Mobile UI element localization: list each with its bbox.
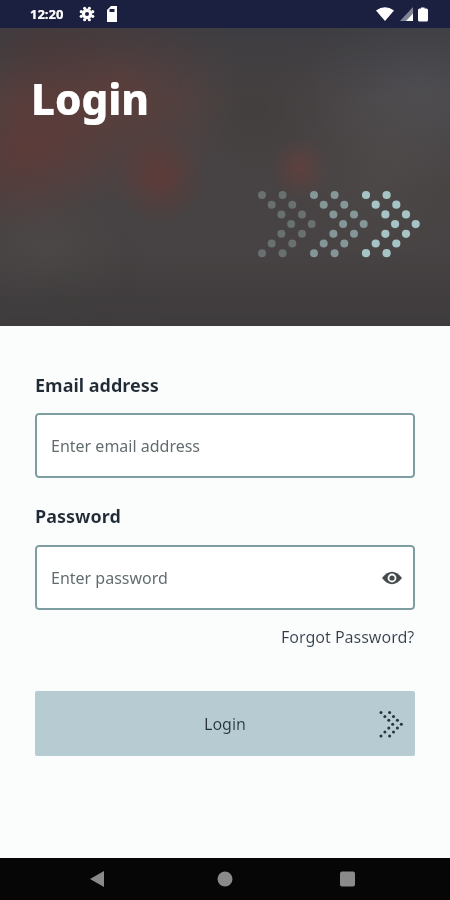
button[interactable]: Enter password: [35, 545, 415, 610]
staticText: Enter email address: [51, 435, 201, 457]
staticText: 12:20: [30, 5, 64, 23]
button[interactable]: [150, 858, 300, 900]
staticText: Password: [35, 504, 121, 529]
staticText: Login: [31, 70, 149, 127]
staticText: Login: [204, 713, 246, 735]
staticText: Email address: [35, 373, 159, 398]
button[interactable]: [300, 858, 450, 900]
staticText: Enter password: [51, 567, 168, 589]
button[interactable]: Enter email address: [35, 413, 415, 478]
staticText: Forgot Password?: [281, 626, 415, 648]
button[interactable]: Forgot Password?: [281, 626, 415, 648]
button[interactable]: Login: [35, 691, 415, 756]
button[interactable]: [0, 858, 150, 900]
